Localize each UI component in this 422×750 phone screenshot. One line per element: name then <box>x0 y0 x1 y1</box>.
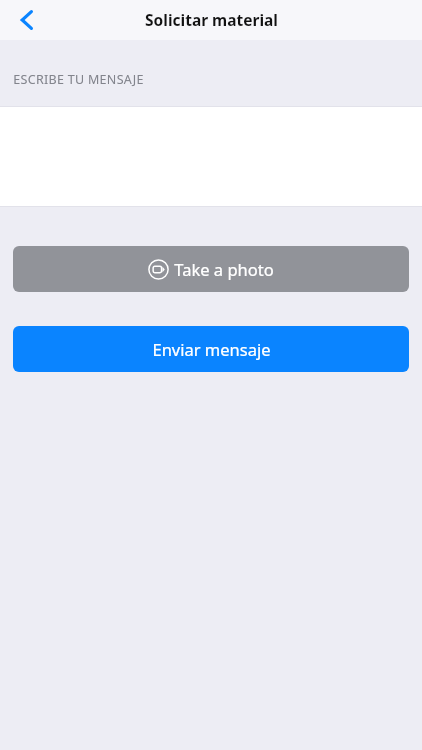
button[interactable]: Back <box>0 0 54 40</box>
staticText: Take a photo <box>174 258 274 280</box>
staticText: ESCRIBE TU MENSAJE <box>13 71 144 88</box>
button[interactable]: Take a photo <box>13 246 409 292</box>
staticText: Enviar mensaje <box>152 338 271 360</box>
button[interactable]: Enviar mensaje <box>13 326 409 372</box>
staticText: Solicitar material <box>145 9 278 30</box>
